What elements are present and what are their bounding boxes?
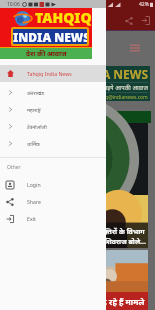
button[interactable]: भक्तिरों के विभाग — [0, 123, 148, 248]
button[interactable]: महाराष्ट्र — [0, 101, 106, 118]
button[interactable]: INDIA NEWS — [4, 66, 150, 101]
button[interactable]: Open navigation menu — [130, 44, 140, 52]
button[interactable]: उत्तराखंड — [0, 84, 106, 101]
staticText: Login — [27, 181, 41, 188]
button[interactable]: Exit — [0, 210, 106, 227]
staticText: महाराष्ट्र — [27, 106, 41, 113]
button[interactable]: बढ़ रहे हैं मामले — [0, 250, 148, 310]
staticText: TAHQIQ — [35, 8, 92, 27]
staticText: टेक्नोलॉजी — [27, 123, 47, 130]
button[interactable]: धार्मिक — [0, 135, 106, 152]
button[interactable]: Login — [0, 176, 106, 193]
button[interactable]: Share — [120, 12, 137, 29]
staticText: Other — [7, 164, 21, 171]
button[interactable]: टेक्नोलॉजी — [0, 118, 106, 135]
staticText: बढ़ रहे हैं मामले — [97, 296, 145, 307]
staticText: tahqiq@indianews.com — [93, 94, 148, 101]
staticText: 42% — [139, 1, 149, 8]
staticText: INDIA NEWS — [74, 66, 148, 82]
staticText: उत्तराखंड — [27, 89, 44, 96]
staticText: देश की आवाज — [26, 49, 67, 59]
button[interactable]: Tahqiq India News — [0, 65, 106, 82]
button[interactable]: Share — [0, 193, 106, 210]
staticText: M शिवराज बोले... — [96, 237, 146, 247]
staticText: Share — [27, 198, 41, 205]
staticText: INDIA NEWS — [13, 29, 87, 44]
staticText: धार्मिक — [27, 140, 40, 147]
staticText: Tahqiq India News — [27, 70, 72, 77]
button[interactable]: Exit — [137, 12, 154, 29]
staticText: भक्तिरों के विभाग — [96, 227, 145, 237]
staticText: र आइये आपकी आवाज — [97, 84, 148, 92]
staticText: Exit — [27, 215, 36, 222]
staticText: 10:06 — [7, 1, 20, 8]
